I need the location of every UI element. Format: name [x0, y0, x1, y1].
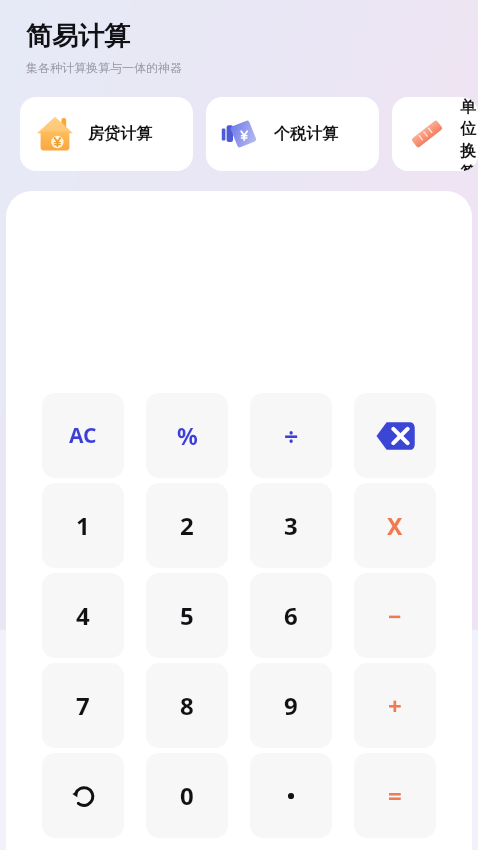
staticText: 0 [180, 779, 194, 812]
staticText: 9 [284, 689, 298, 722]
staticText: 集各种计算换算与一体的神器 [26, 60, 182, 75]
button[interactable]: 房贷计算 [20, 97, 193, 171]
button[interactable]: 8 [146, 663, 228, 748]
button[interactable]: − [354, 573, 436, 658]
button[interactable]: 个税计算 [206, 97, 379, 171]
staticText: 个税计算 [274, 124, 338, 144]
button[interactable]: % [146, 393, 228, 478]
button[interactable]: + [354, 663, 436, 748]
button[interactable]: AC [42, 393, 124, 478]
button[interactable]: 2 [146, 483, 228, 568]
staticText: 4 [76, 599, 90, 632]
button[interactable]: 7 [42, 663, 124, 748]
staticText: 简易计算 [26, 20, 130, 53]
button[interactable]: 1 [42, 483, 124, 568]
staticText: + [388, 689, 402, 722]
button[interactable]: 4 [42, 573, 124, 658]
button[interactable]: 9 [250, 663, 332, 748]
button[interactable]: = [354, 753, 436, 838]
staticText: 8 [180, 689, 194, 722]
staticText: 7 [76, 689, 90, 722]
button[interactable]: 5 [146, 573, 228, 658]
staticText: AC [69, 421, 97, 450]
button[interactable]: Backspace [354, 393, 436, 478]
staticText: ÷ [284, 419, 299, 453]
staticText: 2 [180, 509, 194, 542]
button[interactable]: Undo [42, 753, 124, 838]
button[interactable]: 单位换算 [392, 97, 478, 171]
staticText: 房贷计算 [88, 124, 152, 144]
staticText: % [177, 420, 198, 451]
button[interactable]: X [354, 483, 436, 568]
staticText: 3 [284, 509, 298, 542]
staticText: 单位换算 [460, 97, 478, 171]
button[interactable]: 3 [250, 483, 332, 568]
staticText: 1 [76, 509, 90, 542]
staticText: 5 [180, 599, 194, 632]
staticText: X [387, 510, 403, 541]
button[interactable]: 0 [146, 753, 228, 838]
staticText: 6 [284, 599, 298, 632]
button[interactable]: ÷ [250, 393, 332, 478]
button[interactable]: 6 [250, 573, 332, 658]
staticText: − [388, 600, 402, 631]
button[interactable]: Decimal point [250, 753, 332, 838]
staticText: = [388, 779, 402, 812]
